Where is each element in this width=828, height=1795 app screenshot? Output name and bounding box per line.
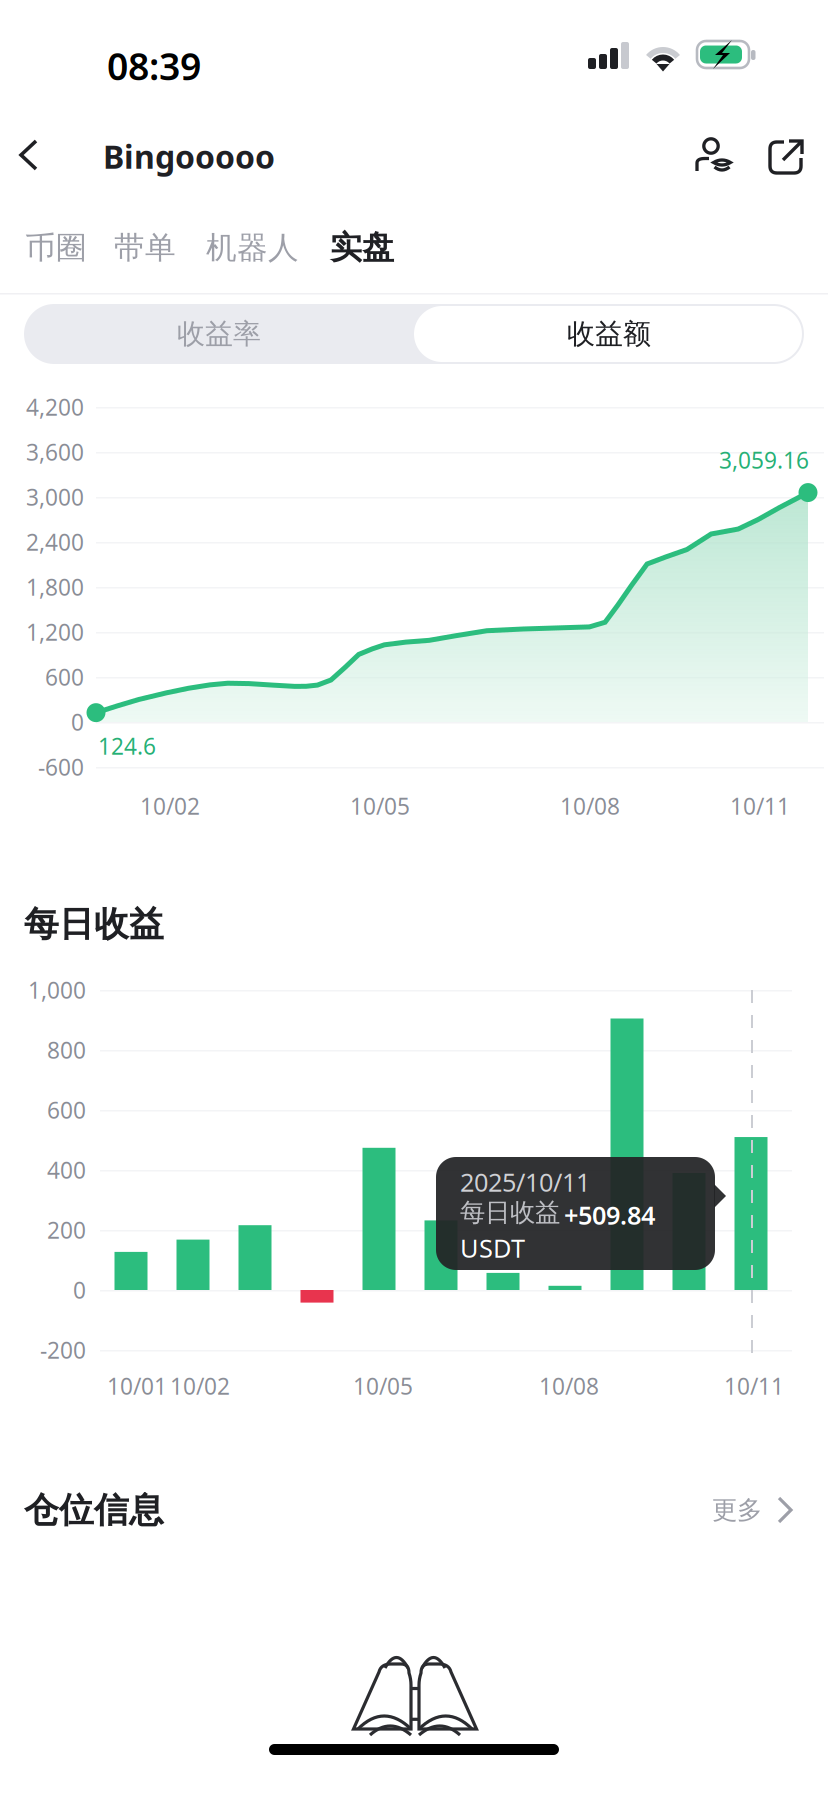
button[interactable]: 更多 [712,1494,794,1526]
staticText: 3,600 [26,437,84,467]
staticText: 1,000 [28,975,86,1005]
staticText: 收益率 [177,317,261,351]
staticText: 2,400 [26,527,84,557]
staticText: 200 [47,1215,86,1245]
staticText: 收益额 [567,317,651,351]
staticText: 币圈 [25,229,87,267]
staticText: 每日收益 [24,903,164,946]
staticText: 10/08 [539,1371,599,1401]
staticText: 10/01 [107,1371,167,1401]
staticText: 10/05 [353,1371,413,1401]
staticText: 0 [73,1275,86,1305]
staticText: 3,059.16 [719,445,809,475]
staticText: 2025/10/11 [460,1165,590,1199]
staticText: 10/02 [140,791,200,821]
button[interactable]: 机器人 [206,229,299,267]
button[interactable]: 实盘 [330,228,394,267]
staticText: 4,200 [26,392,84,422]
staticText: 10/11 [730,791,790,821]
staticText: 仓位信息 [24,1489,164,1532]
staticText: Bingooooo [103,135,275,177]
staticText: 400 [47,1155,86,1185]
staticText: 更多 [712,1494,762,1525]
staticText: 600 [45,662,84,692]
button[interactable]: Share [766,137,810,181]
staticText: -200 [40,1335,86,1365]
button[interactable]: Back [0,128,70,182]
staticText: 机器人 [206,229,299,267]
staticText: 800 [47,1035,86,1065]
staticText: 600 [47,1095,86,1125]
button[interactable]: 收益额 [414,304,804,364]
staticText: 0 [71,707,84,737]
staticText: 10/08 [560,791,620,821]
button[interactable]: Traders [692,134,740,182]
staticText: 10/11 [724,1371,784,1401]
button[interactable]: 带单 [114,229,176,267]
staticText: 每日收益 [460,1197,560,1228]
staticText: 10/05 [350,791,410,821]
staticText: 带单 [114,229,176,267]
staticText: 1,800 [26,572,84,602]
staticText: 124.6 [98,731,156,761]
staticText: USDT [460,1231,525,1265]
staticText: 08:39 [107,41,201,91]
staticText: +509.84 [564,1198,655,1232]
staticText: 3,000 [26,482,84,512]
staticText: 1,200 [26,617,84,647]
staticText: -600 [38,752,84,782]
staticText: 10/02 [170,1371,230,1401]
button[interactable]: 币圈 [25,229,87,267]
staticText: 实盘 [330,228,394,267]
button[interactable]: 收益率 [24,304,414,364]
